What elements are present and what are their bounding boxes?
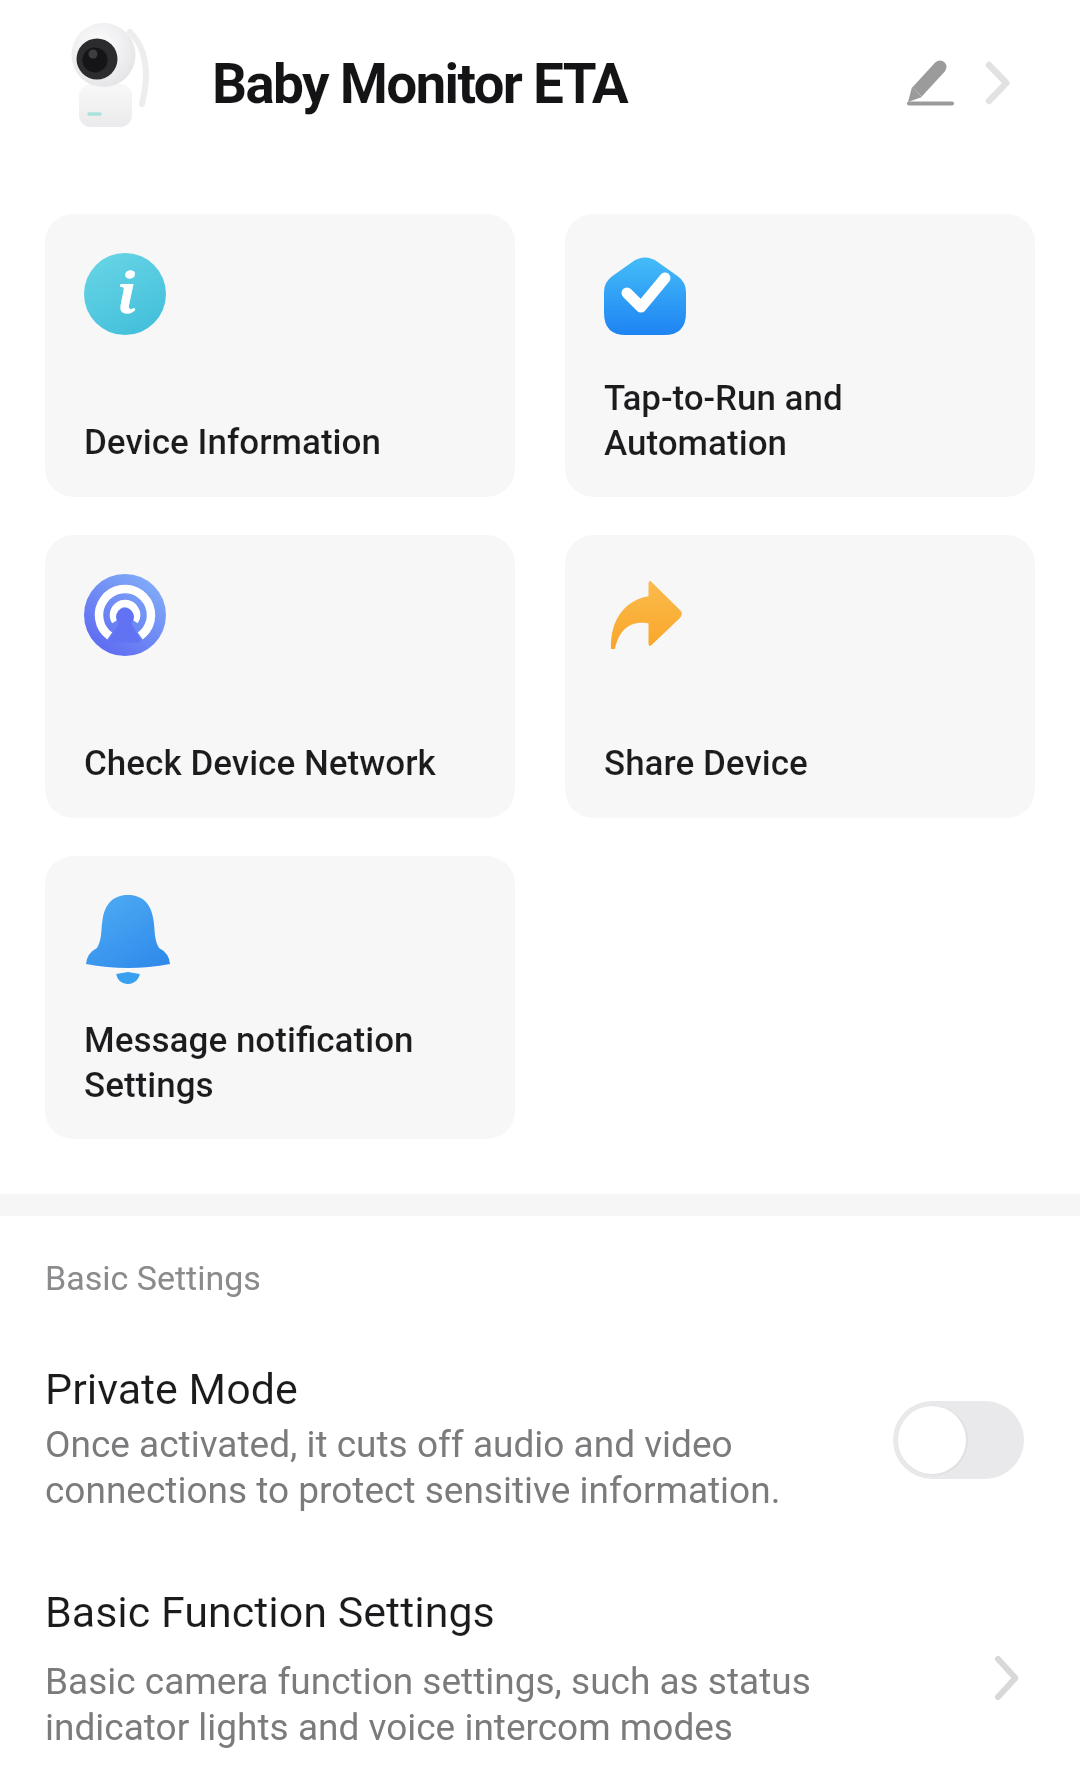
staticText: Once activated, it cuts off audio and vi… <box>45 1423 781 1512</box>
staticText: i <box>117 255 137 329</box>
staticText: Basic camera function settings, such as … <box>45 1660 811 1749</box>
staticText: Share Device <box>604 743 808 784</box>
button[interactable] <box>980 58 1028 112</box>
button[interactable]: Check Device Network <box>45 535 515 818</box>
button[interactable]: Share Device <box>565 535 1035 818</box>
staticText: Check Device Network <box>84 743 436 784</box>
button[interactable]: Message notification Settings <box>45 856 515 1139</box>
button[interactable]: i <box>45 214 515 497</box>
button[interactable]: Tap-to-Run and Automation <box>565 214 1035 497</box>
staticText: Tap-to-Run and Automation <box>604 378 843 463</box>
button[interactable]: Private Mode <box>0 1355 1080 1525</box>
button[interactable] <box>898 50 962 114</box>
staticText: Device Information <box>84 422 381 463</box>
staticText: Basic Settings <box>45 1258 261 1298</box>
staticText: Private Mode <box>45 1364 298 1414</box>
button[interactable]: Basic Function Settings <box>0 1578 1080 1763</box>
staticText: Baby Monitor ETA <box>212 52 628 116</box>
staticText: Message notification Settings <box>84 1020 414 1105</box>
staticText: Basic Function Settings <box>45 1587 495 1637</box>
